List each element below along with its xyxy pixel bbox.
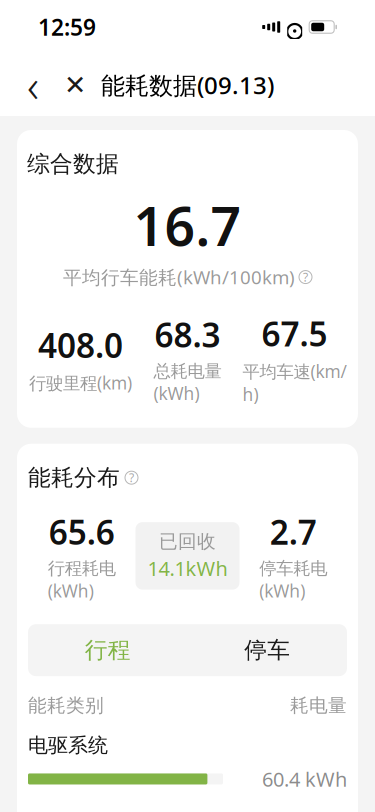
staticText: 60.4 kWh [262,766,347,792]
staticText: 68.3 [154,312,220,357]
staticText: 停车 [244,636,290,664]
staticText: 行程耗电(kWh) [48,558,116,602]
staticText: 能耗类别 [28,694,104,717]
staticText: 行程 [85,636,131,664]
staticText: 16.7 [133,190,241,261]
staticText: 能耗数据(09.13) [101,69,274,101]
staticText: 已回收 [159,530,216,553]
staticText: 平均车速(km/h) [242,360,346,406]
staticText: 平均行车能耗(kWh/100km) [63,265,295,289]
button[interactable]: 平均行车能耗(kWh/100km) [63,265,312,289]
staticText: 电驱系统 [28,733,108,758]
staticText: 能耗分布 [28,464,120,492]
button[interactable]: Back [12,63,54,107]
staticText: 12:59 [38,12,96,42]
staticText: 综合数据 [27,150,119,178]
staticText: 65.6 [49,510,115,554]
button[interactable]: 行程 [28,632,187,668]
staticText: 67.5 [261,311,327,356]
staticText: 行驶里程(km) [29,371,132,394]
staticText: ? [303,269,308,285]
staticText: 2.7 [270,510,317,554]
button[interactable]: 停车 [187,632,347,668]
staticText: ✕ [64,70,86,100]
staticText: 耗电量 [290,694,347,717]
staticText: 14.1kWh [147,555,227,582]
staticText: ? [129,470,134,486]
staticText: ‹ [27,55,39,115]
staticText: 总耗电量(kWh) [153,361,221,405]
button[interactable]: 能耗分布说明 [125,471,138,484]
staticText: 停车耗电(kWh) [259,558,327,602]
staticText: 408.0 [38,323,123,367]
button[interactable]: Close [54,63,96,107]
